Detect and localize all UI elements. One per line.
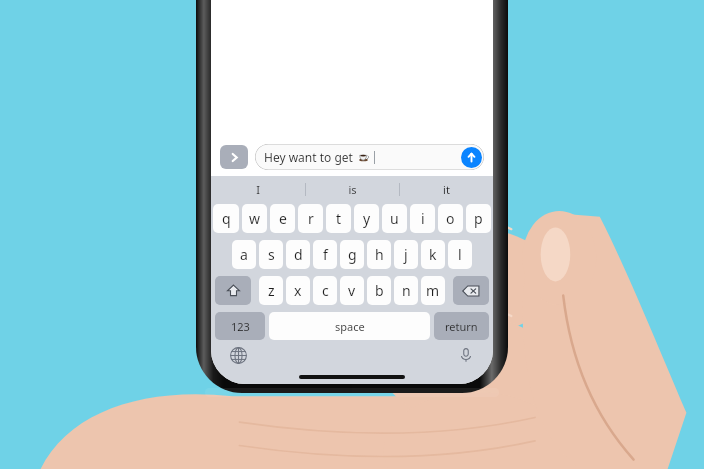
button[interactable]: g	[340, 240, 364, 269]
button[interactable]: space	[269, 312, 430, 340]
staticText: x	[294, 281, 302, 300]
staticText: r	[308, 209, 314, 228]
button[interactable]: return	[434, 312, 489, 340]
staticText: is	[348, 182, 357, 197]
button[interactable]: Change keyboard	[227, 344, 249, 366]
button[interactable]: d	[286, 240, 310, 269]
button[interactable]: n	[394, 276, 418, 305]
staticText: q	[222, 209, 231, 228]
staticText: y	[363, 209, 371, 228]
button[interactable]: Hey want to get	[255, 144, 484, 170]
staticText: u	[390, 209, 399, 228]
staticText: o	[446, 209, 455, 228]
button[interactable]: Key	[453, 276, 489, 305]
button[interactable]: r	[298, 204, 323, 233]
button[interactable]: h	[367, 240, 391, 269]
staticText: f	[323, 245, 328, 264]
staticText: d	[294, 245, 303, 264]
staticText: b	[375, 281, 384, 300]
button[interactable]: x	[286, 276, 310, 305]
button[interactable]: Key	[215, 276, 251, 305]
button[interactable]: o	[438, 204, 463, 233]
button[interactable]: q	[213, 204, 239, 233]
button[interactable]: c	[313, 276, 337, 305]
button[interactable]: a	[232, 240, 256, 269]
staticText: space	[335, 319, 365, 334]
staticText: it	[443, 182, 450, 197]
staticText: n	[402, 281, 411, 300]
staticText: w	[249, 209, 261, 228]
staticText: h	[375, 245, 384, 264]
button[interactable]: w	[242, 204, 267, 233]
button[interactable]: m	[421, 276, 445, 305]
button[interactable]: e	[270, 204, 295, 233]
button[interactable]: y	[354, 204, 379, 233]
button[interactable]: s	[259, 240, 283, 269]
staticText: s	[268, 245, 275, 264]
staticText: 123	[231, 319, 250, 334]
staticText: g	[348, 245, 357, 264]
button[interactable]: v	[340, 276, 364, 305]
button[interactable]: l	[448, 240, 472, 269]
staticText: j	[404, 245, 408, 264]
staticText: I	[256, 182, 260, 197]
button[interactable]: b	[367, 276, 391, 305]
button[interactable]: 123	[215, 312, 265, 340]
staticText: p	[474, 209, 483, 228]
button[interactable]: is	[306, 176, 399, 202]
button[interactable]: j	[394, 240, 418, 269]
button[interactable]: u	[382, 204, 407, 233]
button[interactable]: k	[421, 240, 445, 269]
staticText: k	[429, 245, 437, 264]
button[interactable]: f	[313, 240, 337, 269]
button[interactable]: p	[466, 204, 491, 233]
staticText: t	[336, 209, 342, 228]
staticText: i	[421, 209, 425, 228]
staticText: Hey want to get	[264, 149, 353, 165]
staticText: m	[426, 281, 440, 300]
staticText: return	[445, 319, 478, 334]
button[interactable]: Dictate	[455, 344, 477, 366]
button[interactable]: I	[211, 176, 305, 202]
button[interactable]: Send	[461, 147, 482, 168]
staticText: l	[458, 245, 462, 264]
button[interactable]: Show apps	[220, 145, 248, 169]
staticText: z	[268, 281, 275, 300]
button[interactable]: i	[410, 204, 435, 233]
button[interactable]: z	[259, 276, 283, 305]
button[interactable]: t	[326, 204, 351, 233]
staticText: c	[322, 281, 329, 300]
button[interactable]: it	[400, 176, 493, 202]
staticText: e	[279, 209, 287, 228]
staticText: v	[348, 281, 356, 300]
staticText: a	[240, 245, 248, 264]
